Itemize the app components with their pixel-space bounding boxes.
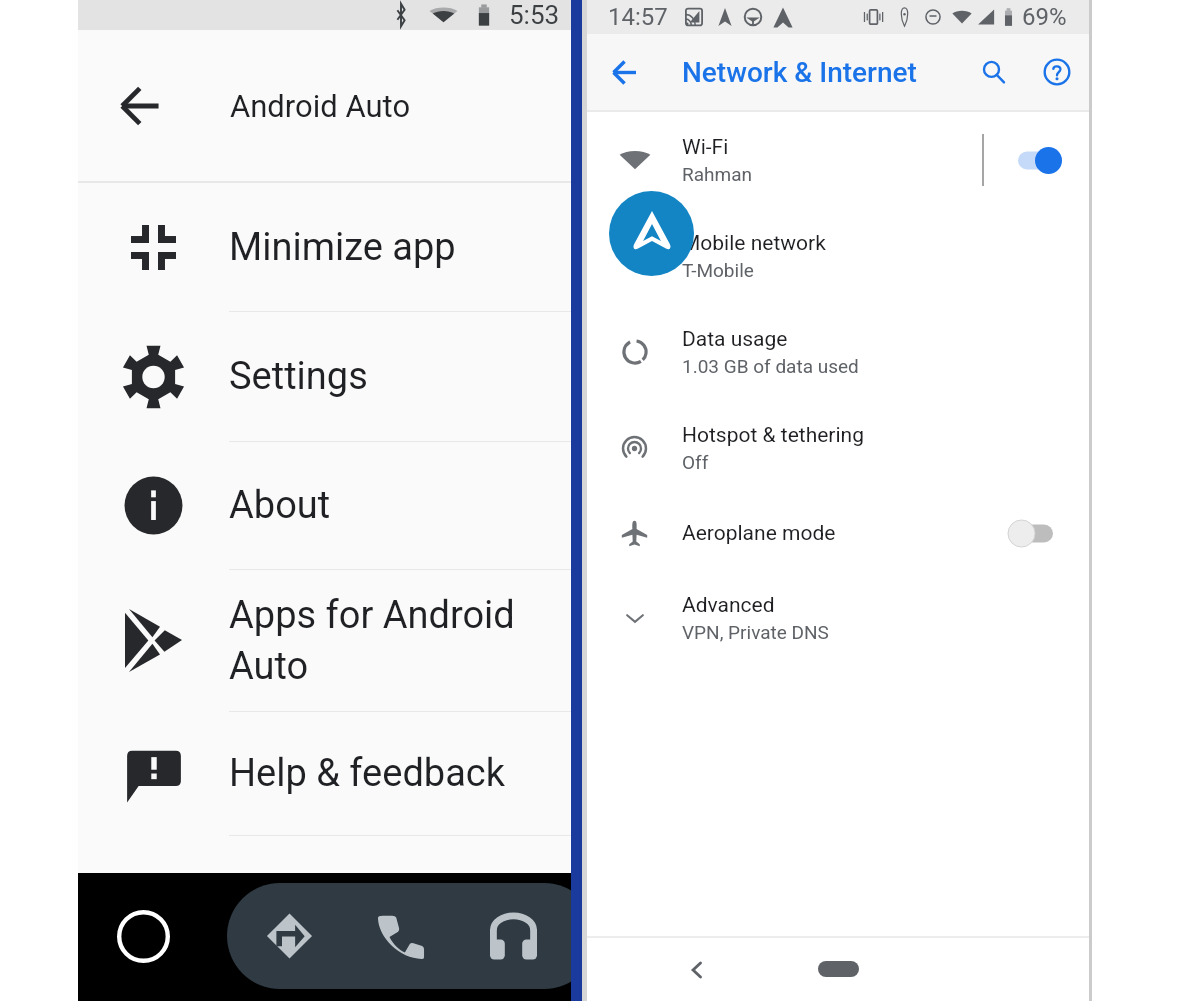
button[interactable]: Data usage xyxy=(587,304,1089,400)
button[interactable]: Apps for Android Auto xyxy=(78,570,571,711)
button[interactable]: Back xyxy=(600,48,648,96)
button[interactable]: Back xyxy=(112,78,168,134)
staticText: Off xyxy=(682,451,709,473)
staticText: T-Mobile xyxy=(682,259,754,281)
staticText: About xyxy=(229,483,331,528)
button[interactable]: Android Auto xyxy=(609,191,694,276)
staticText: VPN, Private DNS xyxy=(682,621,829,643)
staticText: Help & feedback xyxy=(229,751,505,796)
button[interactable]: Aeroplane mode toggle xyxy=(1008,509,1066,557)
staticText: Apps for Android Auto xyxy=(229,593,515,688)
button[interactable]: Home xyxy=(818,961,859,977)
button[interactable]: Media xyxy=(477,900,549,972)
staticText: Android Auto xyxy=(230,88,411,124)
staticText: Minimize app xyxy=(229,225,456,270)
staticText: 1.03 GB of data used xyxy=(682,355,859,377)
staticText: Advanced xyxy=(682,593,775,618)
button[interactable]: Mobile network xyxy=(587,208,1089,304)
button[interactable]: Search xyxy=(968,47,1018,97)
staticText: 69% xyxy=(1022,3,1067,31)
staticText: Network & Internet xyxy=(682,56,917,89)
button[interactable]: Advanced xyxy=(587,570,1089,666)
staticText: Data usage xyxy=(682,327,788,352)
staticText: 5:53 xyxy=(509,0,560,30)
button[interactable]: Help & feedback xyxy=(78,712,571,835)
button[interactable]: Back xyxy=(675,948,719,992)
staticText: Rahman xyxy=(682,163,752,185)
button[interactable]: Hotspot & tethering xyxy=(587,400,1089,496)
button[interactable]: Wi-Fi toggle xyxy=(1018,136,1076,184)
button[interactable]: Home xyxy=(109,902,177,970)
staticText: Hotspot & tethering xyxy=(682,423,864,448)
button[interactable]: Phone xyxy=(365,900,437,972)
button[interactable]: Settings xyxy=(78,312,571,441)
staticText: Wi-Fi xyxy=(682,135,729,160)
button[interactable]: About xyxy=(78,442,571,569)
staticText: Aeroplane mode xyxy=(682,521,1008,546)
button[interactable]: Aeroplane mode xyxy=(587,496,1089,570)
button[interactable]: Help xyxy=(1032,47,1082,97)
staticText: Mobile network xyxy=(682,231,826,256)
button[interactable]: Wi-Fi xyxy=(587,112,1089,208)
button[interactable]: Minimize app xyxy=(78,183,571,311)
staticText: 14:57 xyxy=(608,3,668,31)
staticText: Settings xyxy=(229,354,368,399)
button[interactable]: Navigation xyxy=(253,900,325,972)
